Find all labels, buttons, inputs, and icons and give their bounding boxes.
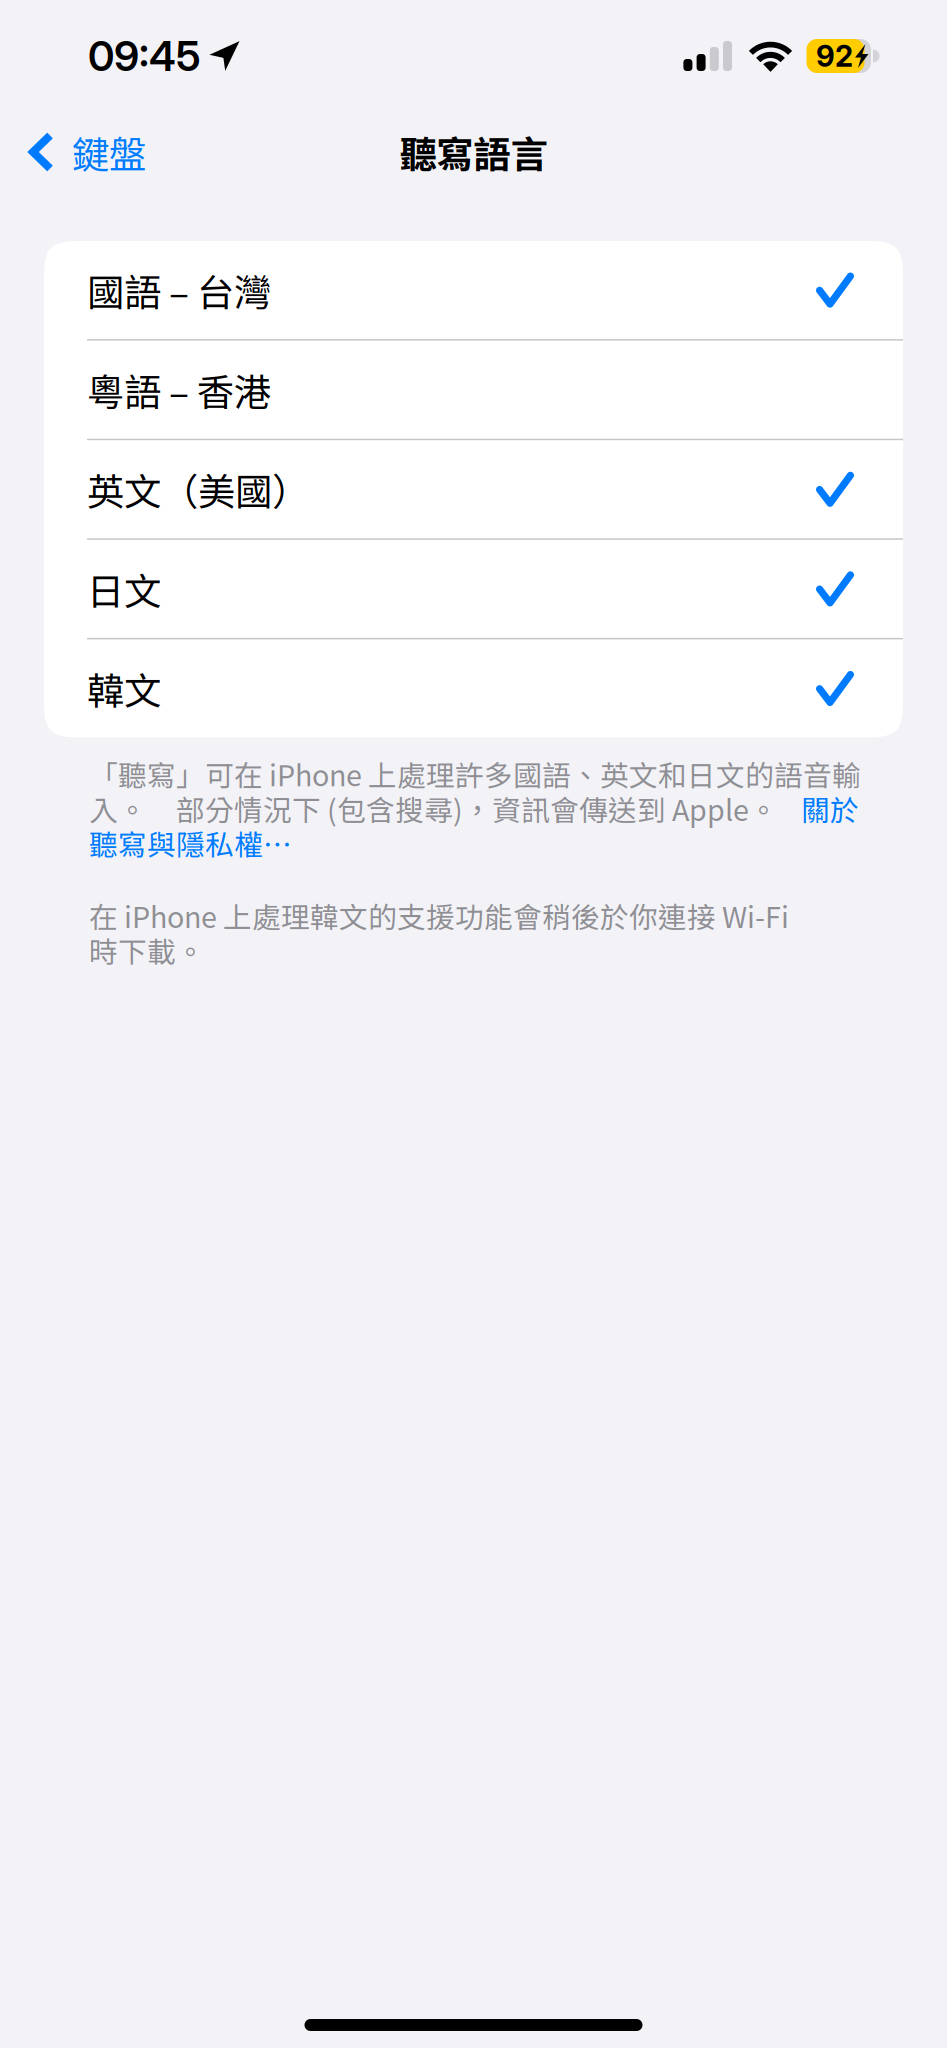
staticText: 鍵盤 <box>72 125 146 179</box>
button[interactable]: 聽寫與隱私權⋯ <box>89 822 292 864</box>
staticText: 日文 <box>87 562 161 616</box>
button[interactable]: 關於 <box>801 788 859 829</box>
button[interactable]: 英文（美國） <box>44 440 903 538</box>
staticText: 入。 部分情況下 (包含搜尋)，資訊會傳送到 Apple。 <box>89 788 778 829</box>
staticText: 09:45 <box>88 31 201 81</box>
staticText: 國語 – 台灣 <box>87 263 271 317</box>
button[interactable]: 日文 <box>44 540 903 638</box>
staticText: 聽寫語言 <box>399 125 547 179</box>
staticText: 粵語 – 香港 <box>87 363 271 417</box>
staticText: 92 <box>816 38 853 74</box>
button[interactable]: 國語 – 台灣 <box>44 241 903 339</box>
staticText: 時下載。 <box>89 929 205 971</box>
button[interactable]: 韓文 <box>44 639 903 737</box>
staticText: 在 iPhone 上處理韓文的支援功能會稍後於你連接 Wi‑Fi <box>89 895 789 936</box>
button[interactable]: 粵語 – 香港 <box>44 341 903 439</box>
staticText: 「聽寫」可在 iPhone 上處理許多國語、英文和日文的語音輸 <box>89 753 861 794</box>
button[interactable]: 鍵盤 <box>0 122 168 182</box>
staticText: 英文（美國） <box>87 462 309 516</box>
staticText: 聽寫與隱私權⋯ <box>89 822 292 864</box>
staticText: 韓文 <box>87 661 161 715</box>
staticText: 關於 <box>801 788 859 829</box>
